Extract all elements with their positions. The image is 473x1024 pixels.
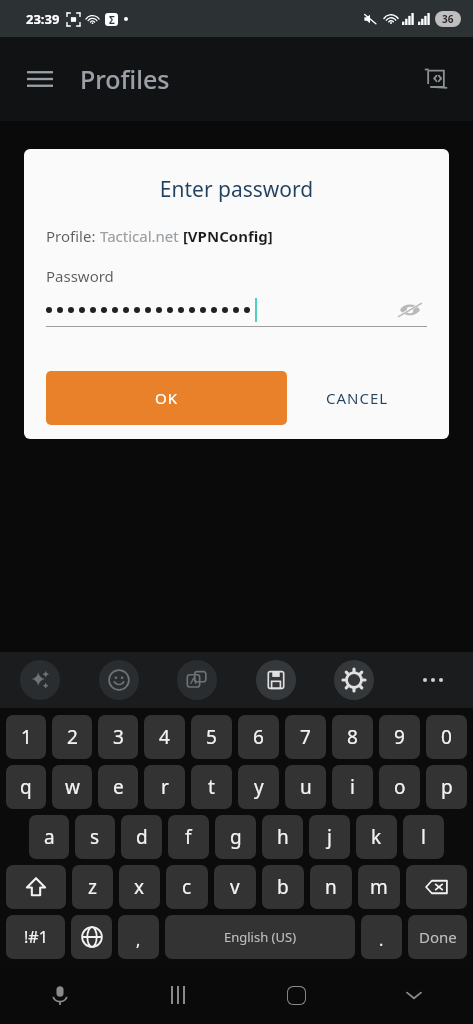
button[interactable]: Settings	[334, 660, 374, 700]
staticText: b	[277, 874, 289, 900]
button[interactable]: .	[361, 915, 402, 959]
staticText: 23:39	[26, 10, 60, 28]
button[interactable]: c	[166, 865, 208, 909]
button[interactable]: Emoji	[99, 660, 139, 700]
button[interactable]: 5	[191, 715, 232, 759]
staticText: !#1	[24, 926, 48, 948]
button[interactable]: f	[168, 815, 209, 859]
button[interactable]: shift	[6, 865, 66, 909]
button[interactable]: p	[426, 765, 467, 809]
button[interactable]: b	[262, 865, 304, 909]
staticText: OK	[155, 388, 179, 408]
staticText: CANCEL	[326, 388, 389, 408]
staticText: 4	[159, 724, 170, 750]
staticText: p	[441, 774, 453, 800]
button[interactable]: More options	[413, 660, 453, 700]
button[interactable]: d	[121, 815, 162, 859]
staticText: w	[65, 774, 80, 800]
staticText: z	[88, 874, 97, 900]
staticText: m	[370, 874, 388, 900]
staticText: a	[44, 824, 55, 850]
staticText: English (US)	[224, 928, 297, 946]
button[interactable]: g	[215, 815, 256, 859]
staticText: v	[230, 874, 240, 900]
staticText: Profile:	[46, 226, 100, 246]
button[interactable]: u	[285, 765, 326, 809]
button[interactable]: z	[72, 865, 113, 909]
staticText: n	[325, 874, 337, 900]
button[interactable]: k	[356, 815, 397, 859]
staticText: Tactical.net	[100, 226, 179, 246]
button[interactable]: 8	[332, 715, 373, 759]
button[interactable]: 7	[285, 715, 326, 759]
staticText: 8	[347, 724, 358, 750]
button[interactable]: Translate	[177, 660, 217, 700]
staticText: 0	[441, 724, 452, 750]
staticText: 6	[253, 724, 264, 750]
button[interactable]: q	[6, 765, 46, 809]
staticText: Profiles	[80, 62, 170, 96]
button[interactable]: English (US)	[165, 915, 355, 959]
staticText: r	[161, 774, 169, 800]
button[interactable]: 9	[379, 715, 420, 759]
staticText: Enter password	[46, 175, 427, 204]
button[interactable]: y	[238, 765, 279, 809]
button[interactable]: 4	[144, 715, 185, 759]
button[interactable]: v	[214, 865, 256, 909]
button[interactable]: 6	[238, 715, 279, 759]
button[interactable]: !#1	[6, 915, 65, 959]
button[interactable]: OK	[46, 371, 287, 425]
button[interactable]: 2	[52, 715, 92, 759]
button[interactable]: s	[75, 815, 115, 859]
staticText: u	[300, 774, 312, 800]
staticText: [VPNConfig]	[179, 226, 273, 246]
button[interactable]: 3	[98, 715, 138, 759]
button[interactable]: CANCEL	[287, 371, 427, 425]
button[interactable]: m	[358, 865, 400, 909]
button[interactable]: Show password	[393, 294, 427, 326]
staticText: 3	[113, 724, 124, 750]
button[interactable]: Recents	[119, 966, 237, 1024]
button[interactable]: h	[262, 815, 303, 859]
button[interactable]: Voice input	[0, 966, 119, 1024]
button[interactable]: AI suggestions	[20, 660, 60, 700]
button[interactable]: l	[403, 815, 444, 859]
button[interactable]: 0	[426, 715, 467, 759]
button[interactable]: ,	[118, 915, 159, 959]
button[interactable]: i	[332, 765, 373, 809]
button[interactable]: t	[191, 765, 232, 809]
button[interactable]: j	[309, 815, 350, 859]
staticText: t	[208, 774, 215, 800]
button[interactable]: w	[52, 765, 92, 809]
button[interactable]: Menu	[16, 55, 64, 103]
staticText: q	[20, 774, 32, 800]
staticText: i	[350, 774, 355, 800]
button[interactable]: Home	[237, 966, 355, 1024]
button[interactable]: a	[29, 815, 69, 859]
staticText: 1	[21, 724, 32, 750]
button[interactable]: Clipboard	[256, 660, 296, 700]
button[interactable]: globe	[71, 915, 112, 959]
button[interactable]: o	[379, 765, 420, 809]
button[interactable]: r	[144, 765, 185, 809]
staticText: s	[90, 824, 100, 850]
button[interactable]: 1	[6, 715, 46, 759]
staticText: f	[185, 824, 192, 850]
staticText: 5	[206, 724, 217, 750]
button[interactable]: backspace	[406, 865, 467, 909]
staticText: l	[421, 824, 426, 850]
button[interactable]: e	[98, 765, 138, 809]
staticText: h	[277, 824, 289, 850]
staticText: y	[254, 774, 264, 800]
staticText: 9	[394, 724, 405, 750]
button[interactable]: n	[310, 865, 352, 909]
staticText: c	[182, 874, 192, 900]
staticText: ,	[136, 929, 141, 951]
button[interactable]: x	[119, 865, 160, 909]
button[interactable]: Hide keyboard	[355, 966, 473, 1024]
button[interactable]: Done	[408, 915, 467, 959]
staticText: j	[327, 824, 332, 850]
staticText: d	[136, 824, 148, 850]
button[interactable]: Import config	[413, 56, 459, 102]
staticText: o	[394, 774, 406, 800]
